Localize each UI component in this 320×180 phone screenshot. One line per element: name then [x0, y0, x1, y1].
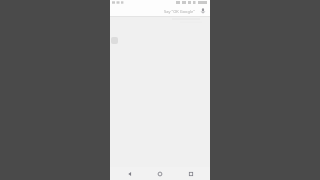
staticText: Say "OK Google": [164, 9, 195, 14]
button[interactable]: Voice search: [199, 7, 207, 15]
button[interactable]: Recent apps: [180, 167, 202, 180]
button[interactable]: Say "OK Google": [110, 5, 210, 17]
button[interactable]: Loading item: [111, 37, 118, 44]
button[interactable]: Home: [149, 167, 171, 180]
button[interactable]: Back: [119, 167, 141, 180]
